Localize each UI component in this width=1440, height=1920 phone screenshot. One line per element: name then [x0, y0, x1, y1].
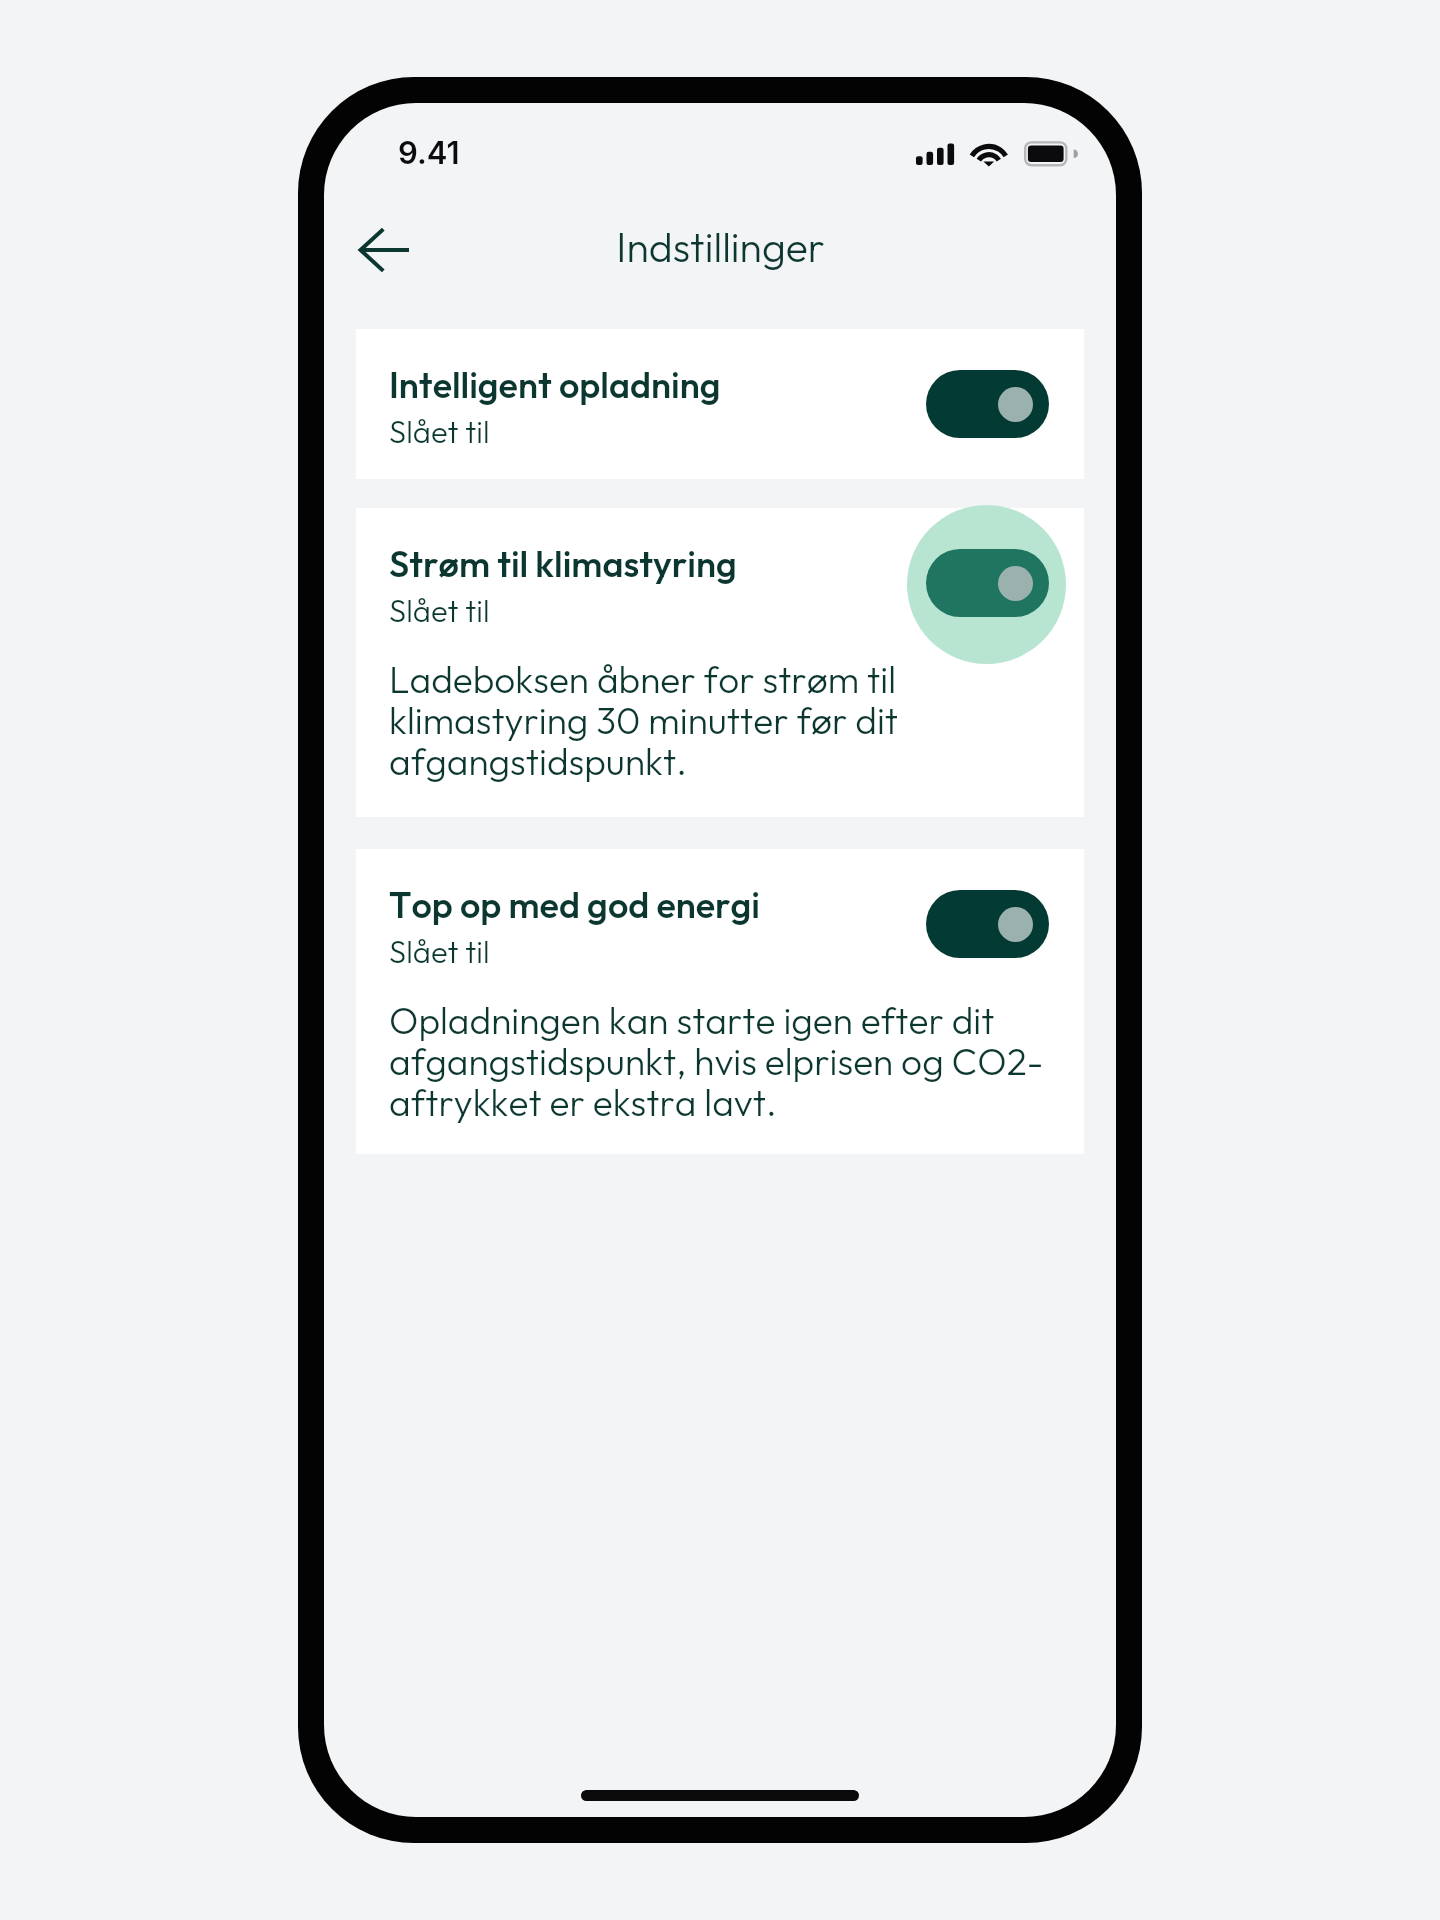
staticText: Slået til	[389, 932, 490, 971]
button[interactable]: Intelligent opladning	[356, 329, 1084, 479]
staticText: Intelligent opladning	[389, 362, 721, 407]
staticText: 9.41	[398, 134, 460, 172]
staticText: Top op med god energi	[389, 882, 761, 927]
staticText: Ladeboksen åbner for strøm til klimastyr…	[389, 656, 899, 784]
button[interactable]: Strøm til klimastyring	[356, 508, 1084, 817]
staticText: Strøm til klimastyring	[389, 541, 737, 586]
button[interactable]: Slå til eller fra	[926, 370, 1049, 438]
button[interactable]: Slå til eller fra	[926, 549, 1049, 617]
staticText: Slået til	[389, 591, 490, 630]
staticText: Indstillinger	[616, 221, 825, 273]
button[interactable]: Tilbage	[339, 203, 433, 297]
button[interactable]: Slå til eller fra	[926, 890, 1049, 958]
staticText: Slået til	[389, 412, 490, 451]
button[interactable]: Top op med god energi	[356, 849, 1084, 1154]
staticText: Opladningen kan starte igen efter dit af…	[389, 997, 1044, 1125]
